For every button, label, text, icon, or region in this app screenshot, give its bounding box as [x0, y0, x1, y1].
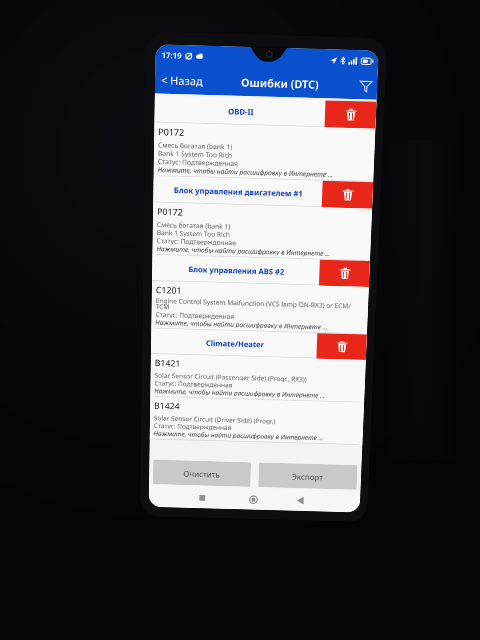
- staticText: Bank 1 System Too Rich: [158, 148, 232, 159]
- staticText: Engine Control System Malfunction (VCS l…: [156, 296, 364, 316]
- staticText: < Назад: [161, 73, 203, 88]
- staticText: Блок управления двигателем #1: [173, 185, 303, 199]
- button[interactable]: Delete: [324, 100, 376, 129]
- button[interactable]: Delete: [319, 260, 370, 287]
- staticText: B1421: [155, 357, 181, 369]
- staticText: 17:19: [161, 50, 182, 61]
- button[interactable]: Очистить: [153, 459, 251, 487]
- staticText: Нажмите, чтобы найти расшифровку в Интер…: [156, 244, 331, 257]
- staticText: Нажмите, чтобы найти расшифровку в Интер…: [154, 429, 325, 441]
- staticText: Статус: Подтвержденная: [154, 421, 231, 431]
- staticText: Статус: Подтвержденная: [154, 379, 233, 388]
- staticText: Смесь богатая (bank 1): [158, 140, 232, 150]
- staticText: Очистить: [183, 468, 220, 479]
- staticText: Блок управления ABS #2: [188, 264, 285, 277]
- staticText: P0172: [158, 126, 185, 139]
- staticText: Смесь богатая (bank 1): [157, 220, 230, 230]
- button[interactable]: Экспорт: [258, 462, 358, 490]
- button[interactable]: Back: [290, 491, 310, 510]
- staticText: Ошибки (DTC): [241, 75, 319, 92]
- staticText: Экспорт: [292, 471, 324, 482]
- staticText: Нажмите, чтобы найти расшифровку в Интер…: [158, 165, 334, 178]
- staticText: Нажмите, чтобы найти расшифровку в Интер…: [155, 318, 329, 330]
- staticText: C1201: [156, 284, 182, 297]
- staticText: Статус: Подтвержденная: [155, 310, 234, 320]
- staticText: Climate/Heater: [206, 338, 264, 349]
- button[interactable]: Filter: [354, 71, 378, 100]
- staticText: Нажмите, чтобы найти расшифровку в Интер…: [154, 386, 326, 399]
- staticText: Статус: Подтвержденная: [157, 236, 236, 246]
- staticText: P0172: [157, 206, 183, 219]
- button[interactable]: < Назад: [155, 67, 210, 94]
- staticText: Solar Sensor Circuit (Passenger Side) (P…: [154, 371, 307, 383]
- staticText: OBD-II: [228, 106, 254, 117]
- staticText: Solar Sensor Circuit (Driver Side) (Prog…: [154, 413, 276, 424]
- staticText: Bank 1 System Too Rich: [157, 228, 230, 238]
- button[interactable]: Recents: [192, 488, 212, 508]
- button[interactable]: Home: [243, 489, 263, 509]
- staticText: Статус: Подтвержденная: [158, 157, 238, 167]
- button[interactable]: Delete: [316, 333, 367, 360]
- button[interactable]: Delete: [322, 181, 373, 209]
- staticText: B1424: [154, 400, 180, 412]
